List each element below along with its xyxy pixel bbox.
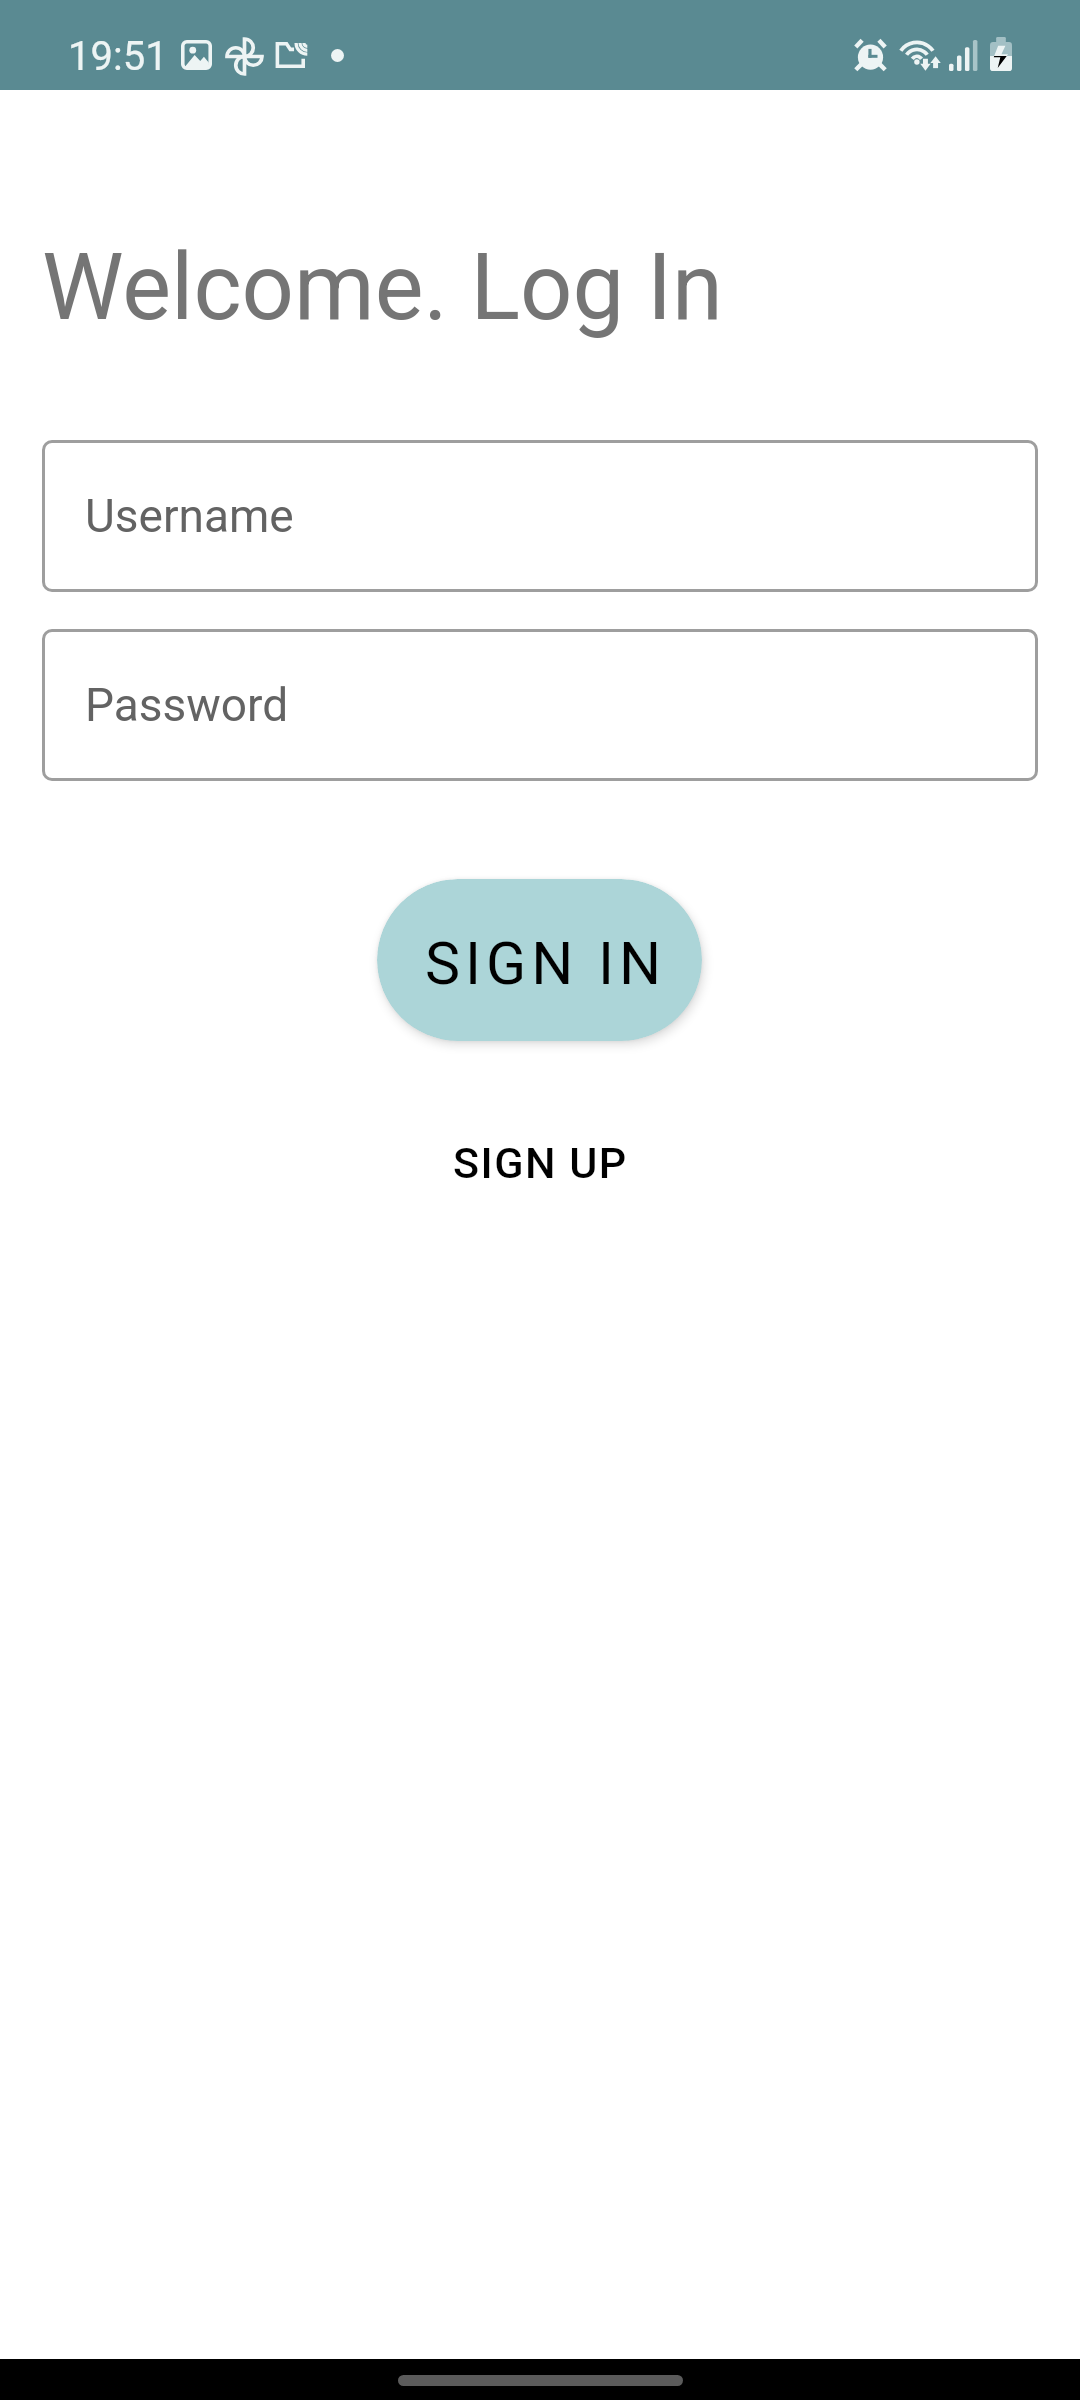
button[interactable]: Username	[42, 440, 1038, 592]
staticText: SIGN IN	[425, 929, 667, 998]
staticText: Welcome. Log In	[42, 234, 723, 342]
staticText: SIGN UP	[453, 1138, 628, 1188]
button[interactable]: SIGN IN	[377, 879, 702, 1041]
staticText: Username	[85, 489, 294, 543]
button[interactable]: Password	[42, 629, 1038, 781]
other: Home	[398, 2375, 683, 2386]
staticText: 19:51	[68, 33, 168, 80]
staticText: Password	[85, 678, 289, 732]
button[interactable]: SIGN UP	[405, 1108, 675, 1218]
